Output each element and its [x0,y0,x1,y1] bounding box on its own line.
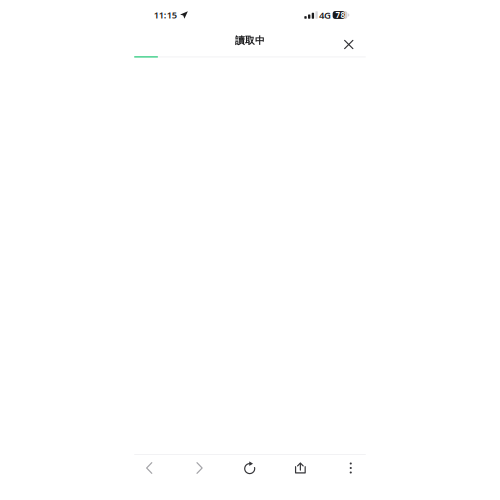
staticText: 11:15 [154,9,177,21]
staticText: 4G [319,8,331,22]
button[interactable]: Share [285,453,315,483]
staticText: 78 [336,10,346,20]
staticText: 讀取中 [235,34,265,47]
button[interactable]: Back [134,453,164,483]
button[interactable]: Forward [185,453,215,483]
button[interactable]: Close [336,28,362,54]
button[interactable]: More [336,453,366,483]
button[interactable]: Reload [235,453,265,483]
